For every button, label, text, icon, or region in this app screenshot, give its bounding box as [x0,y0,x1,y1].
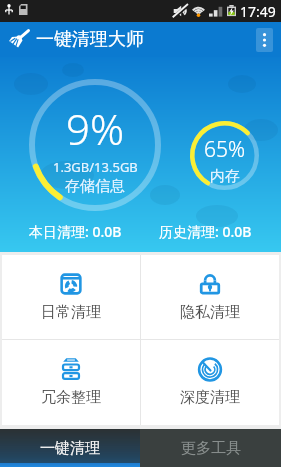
button[interactable]: More options [256,28,273,52]
staticText: 隐私清理 [180,303,240,322]
staticText: 内存 [210,167,240,186]
button[interactable]: 深度清理 [141,340,279,425]
button[interactable]: 更多工具 [140,429,281,467]
button[interactable]: 日常清理 [2,255,140,339]
staticText: 历史清理: 0.0B [159,222,252,241]
staticText: 1.3GB/13.5GB [53,158,138,176]
staticText: 更多工具 [181,439,241,458]
button[interactable]: 一键清理 [0,429,140,467]
staticText: 深度清理 [180,388,240,407]
staticText: 9% [66,100,125,157]
button[interactable]: 冗余整理 [2,340,140,425]
button[interactable]: 隐私清理 [141,255,279,339]
staticText: 一键清理大师 [36,28,144,51]
staticText: 本日清理: 0.0B [29,222,122,241]
staticText: 65% [204,135,246,164]
staticText: 存储信息 [65,177,125,196]
staticText: 17:49 [240,2,276,21]
staticText: 日常清理 [41,303,101,322]
staticText: 一键清理 [40,439,100,458]
staticText: 冗余整理 [41,388,101,407]
